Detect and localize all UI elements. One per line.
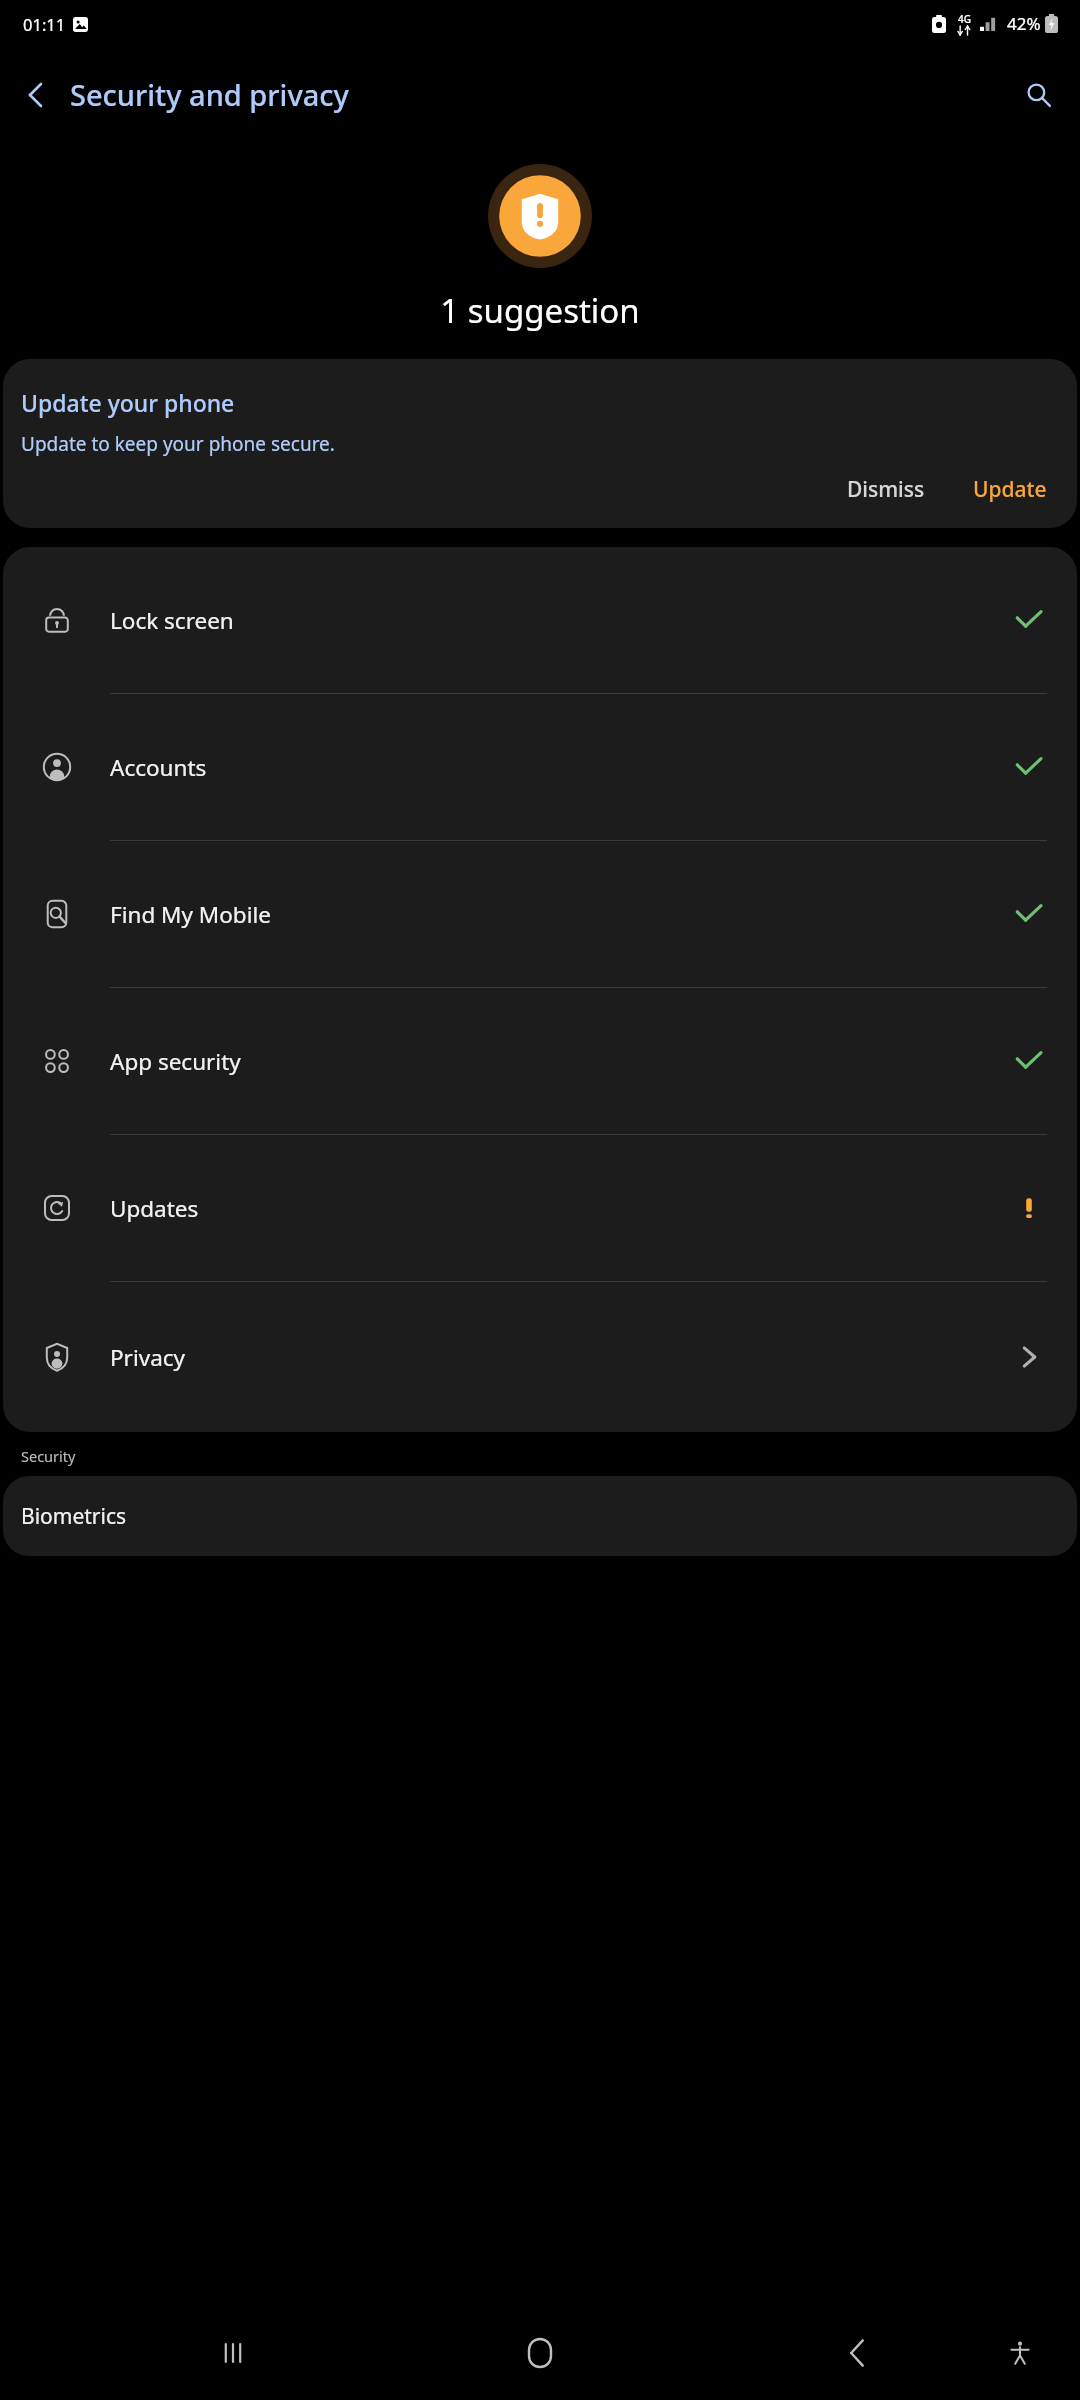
button[interactable]: Update your phone: [3, 359, 1077, 528]
staticText: Dismiss: [847, 475, 925, 504]
staticText: Security and privacy: [70, 75, 349, 114]
staticText: Lock screen: [110, 605, 981, 636]
staticText: 01:11: [23, 13, 66, 35]
button[interactable]: Lock screen: [3, 547, 1077, 694]
button[interactable]: Back: [824, 2320, 890, 2386]
button[interactable]: Find My Mobile: [3, 841, 1077, 988]
button[interactable]: Privacy: [3, 1282, 1077, 1432]
button[interactable]: Accounts: [3, 694, 1077, 841]
staticText: 42%: [1007, 12, 1041, 35]
staticText: Update to keep your phone secure.: [21, 431, 335, 457]
button[interactable]: Back: [8, 66, 66, 124]
staticText: Biometrics: [21, 1502, 127, 1531]
staticText: 4G: [958, 12, 971, 26]
button[interactable]: Search: [1010, 66, 1068, 124]
button[interactable]: Recents: [200, 2320, 266, 2386]
button[interactable]: Accessibility: [990, 2323, 1050, 2383]
staticText: Find My Mobile: [110, 899, 981, 930]
staticText: 1 suggestion: [0, 288, 1080, 333]
staticText: Privacy: [110, 1342, 981, 1373]
staticText: Updates: [110, 1193, 981, 1224]
button[interactable]: Biometrics: [3, 1476, 1077, 1556]
button[interactable]: Dismiss: [835, 467, 937, 512]
button[interactable]: Update: [961, 467, 1059, 512]
staticText: Update: [973, 475, 1047, 504]
button[interactable]: Home: [507, 2320, 573, 2386]
staticText: App security: [110, 1046, 981, 1077]
staticText: Security: [21, 1446, 76, 1466]
staticText: Accounts: [110, 752, 981, 783]
button[interactable]: App security: [3, 988, 1077, 1135]
button[interactable]: Updates: [3, 1135, 1077, 1282]
staticText: Update your phone: [21, 387, 235, 418]
